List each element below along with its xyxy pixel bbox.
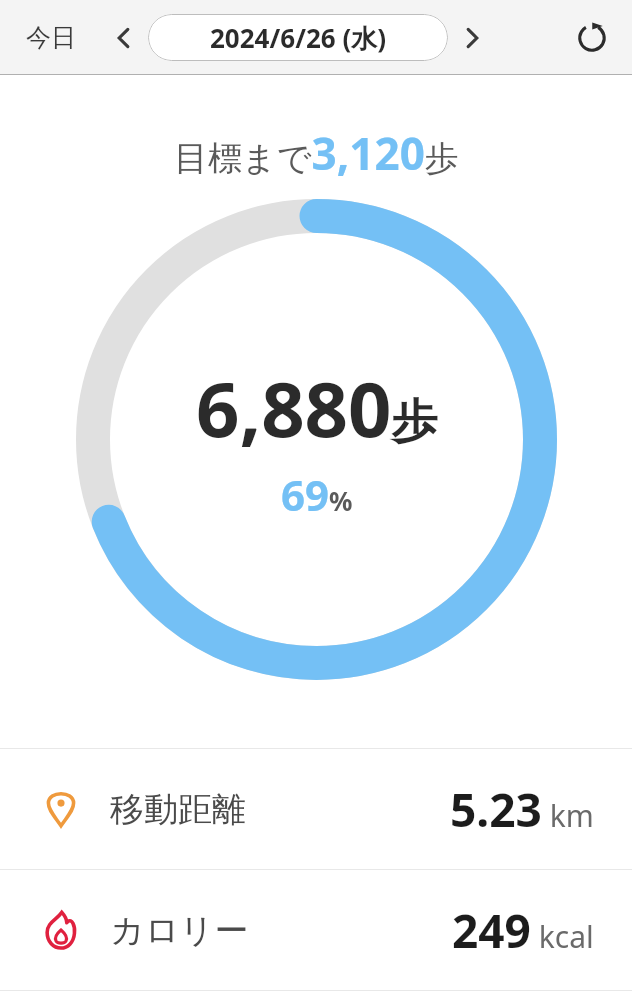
staticText: カロリー [110,909,249,952]
other: Distance [40,788,82,830]
staticText: 今日 [26,22,76,53]
staticText: 249 kcal [452,899,594,962]
button[interactable]: Calories [0,870,632,990]
button[interactable]: Distance [0,749,632,869]
staticText: 6,880歩 [196,356,438,460]
staticText: 目標まで3,120歩 [174,123,459,183]
button[interactable]: Previous day [104,18,144,58]
staticText: 移動距離 [110,788,246,831]
button[interactable]: 2024/6/26 (水) [148,14,448,61]
button[interactable]: Refresh [568,14,616,62]
staticText: 5.23 km [450,778,594,841]
other: Calories [40,909,82,951]
button[interactable]: Next day [452,18,492,58]
staticText: 2024/6/26 (水) [210,20,387,56]
button[interactable]: 今日 [16,16,86,59]
staticText: 69% [281,466,353,523]
